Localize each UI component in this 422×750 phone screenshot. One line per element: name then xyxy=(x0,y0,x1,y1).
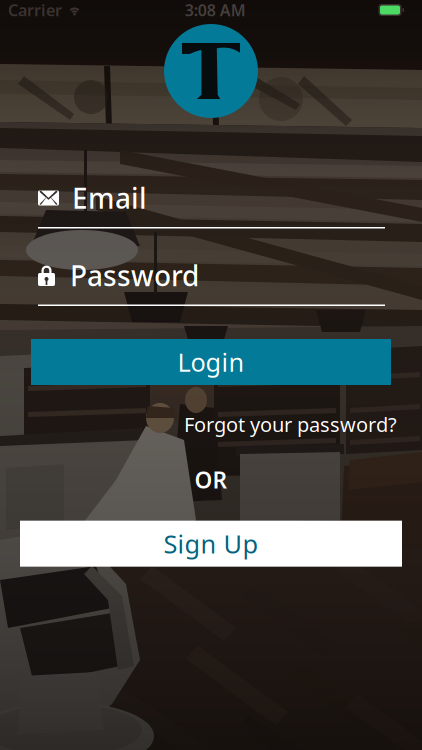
staticText: Carrier xyxy=(8,0,62,21)
staticText: OR xyxy=(194,465,227,495)
staticText: Forgot your password? xyxy=(184,411,397,438)
button[interactable]: Sign Up xyxy=(20,521,402,567)
button[interactable]: Login xyxy=(31,339,391,385)
button[interactable]: Forgot your password? xyxy=(184,409,397,440)
staticText: 3:08 AM xyxy=(185,0,246,21)
staticText: Email xyxy=(72,179,147,217)
staticText: Sign Up xyxy=(163,527,258,560)
staticText: Login xyxy=(177,345,244,379)
staticText: Password xyxy=(70,257,199,294)
